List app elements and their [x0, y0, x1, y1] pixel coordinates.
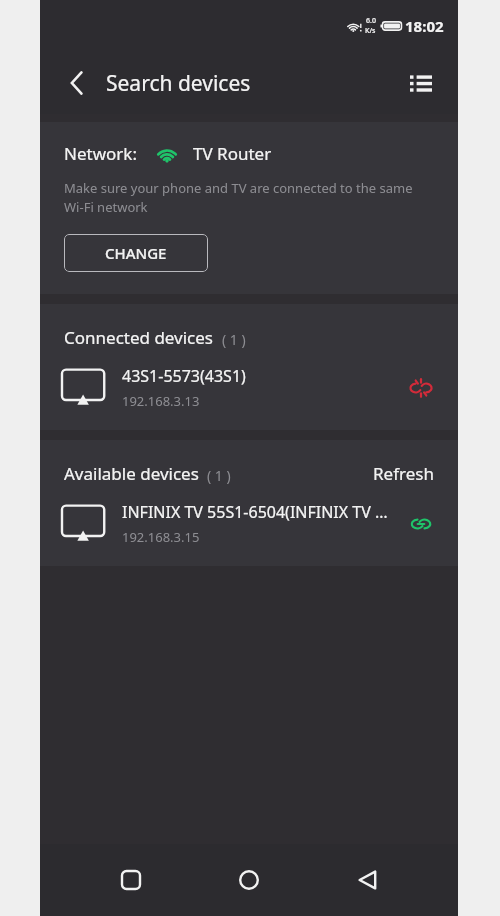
- button[interactable]: CHANGE: [64, 234, 208, 272]
- staticText: INFINIX TV 55S1-6504(INFINIX TV 55S..: [122, 501, 396, 523]
- button[interactable]: Refresh: [373, 462, 434, 485]
- staticText: TV Router: [193, 142, 272, 165]
- staticText: 18:02: [405, 16, 444, 36]
- staticText: Make sure your phone and TV are connecte…: [64, 179, 413, 216]
- button[interactable]: List: [402, 64, 440, 102]
- staticText: Refresh: [373, 462, 434, 485]
- button[interactable]: Connect: [404, 507, 438, 541]
- button[interactable]: Back: [60, 66, 94, 100]
- staticText: 6.0: [366, 16, 376, 26]
- staticText: Connected devices: [64, 326, 214, 349]
- staticText: Search devices: [106, 69, 251, 98]
- button[interactable]: INFINIX TV 55S1-6504(INFINIX TV 55S..: [40, 485, 458, 566]
- button[interactable]: Disconnect: [404, 371, 438, 405]
- button[interactable]: Back: [340, 852, 396, 908]
- button[interactable]: Recents: [103, 852, 159, 908]
- staticText: 192.168.3.15: [122, 528, 200, 546]
- staticText: 192.168.3.13: [122, 392, 200, 410]
- staticText: ( 1 ): [222, 330, 246, 349]
- staticText: ( 1 ): [207, 466, 231, 485]
- button[interactable]: Home: [221, 852, 277, 908]
- staticText: Available devices: [64, 462, 199, 485]
- staticText: Network:: [64, 142, 137, 165]
- button[interactable]: 43S1-5573(43S1): [40, 349, 458, 430]
- staticText: CHANGE: [105, 243, 167, 263]
- staticText: K/s: [365, 26, 376, 36]
- staticText: 43S1-5573(43S1): [122, 365, 246, 387]
